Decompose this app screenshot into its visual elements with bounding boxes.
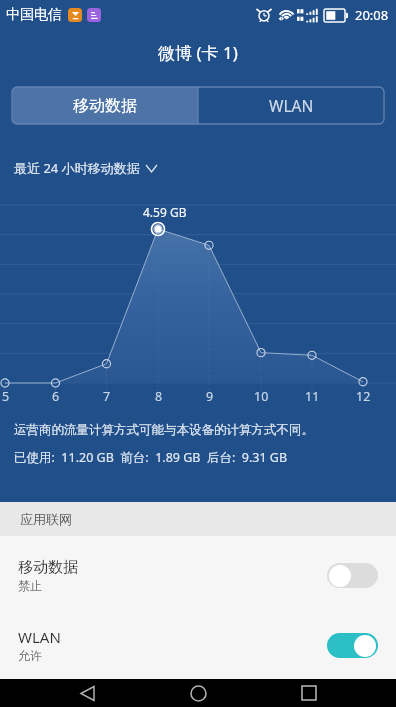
staticText: 最近 24 小时移动数据 — [14, 159, 140, 177]
staticText: 11 — [305, 388, 320, 405]
staticText: 6 — [52, 388, 60, 405]
button[interactable]: Back — [63, 679, 111, 707]
staticText: 5 — [2, 388, 10, 405]
staticText: 10 — [254, 388, 269, 405]
button[interactable]: 移动数据 — [12, 87, 198, 124]
button[interactable]: On — [327, 633, 378, 658]
staticText: 12 — [356, 388, 371, 405]
button[interactable]: WLAN — [198, 87, 384, 124]
button[interactable]: 移动数据 — [0, 541, 396, 609]
staticText: 运营商的流量计算方式可能与本设备的计算方式不同。 — [14, 422, 314, 438]
button[interactable]: WLAN — [0, 611, 396, 679]
staticText: 微博 (卡 1) — [158, 41, 238, 64]
staticText: WLAN — [18, 627, 61, 647]
staticText: WLAN — [269, 95, 314, 116]
staticText: 允许 — [18, 648, 42, 663]
staticText: 中国电信 — [6, 6, 62, 24]
button[interactable]: Recents — [285, 679, 333, 707]
staticText: 移动数据 — [18, 558, 78, 577]
staticText: 8 — [155, 388, 163, 405]
staticText: 4.59 GB — [143, 204, 187, 220]
staticText: 7 — [103, 388, 111, 405]
staticText: 20:08 — [355, 6, 389, 24]
staticText: 9 — [206, 388, 214, 405]
staticText: 移动数据 — [73, 96, 137, 116]
staticText: 禁止 — [18, 578, 42, 593]
button[interactable]: 最近 24 小时移动数据 — [0, 155, 396, 181]
staticText: 应用联网 — [20, 511, 72, 527]
button[interactable]: Home — [174, 679, 222, 707]
staticText: 已使用: 11.20 GB 前台: 1.89 GB 后台: 9.31 GB — [14, 449, 288, 466]
button[interactable]: Off — [327, 563, 378, 588]
